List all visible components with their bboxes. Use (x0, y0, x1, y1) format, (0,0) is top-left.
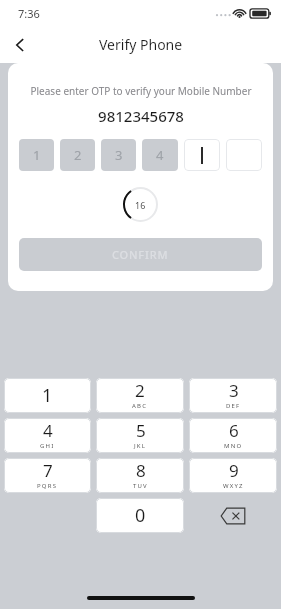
staticText: 5 (136, 419, 146, 442)
staticText: PQRS (37, 482, 58, 490)
staticText: 4 (156, 146, 164, 164)
staticText: 7:36 (18, 6, 40, 21)
button[interactable]: 1 (4, 378, 91, 413)
button[interactable]: 7 (4, 458, 91, 493)
staticText: 7 (43, 459, 53, 482)
staticText: 0 (135, 503, 146, 528)
staticText: Verify Phone (99, 35, 183, 54)
button[interactable]: 2 (60, 139, 95, 171)
staticText: TUV (133, 482, 148, 490)
button[interactable]: 0 (96, 498, 184, 533)
button[interactable]: Back (0, 26, 40, 63)
button[interactable]: 9 (189, 458, 277, 493)
staticText: JKL (134, 442, 147, 450)
staticText: 9 (229, 459, 239, 482)
button[interactable] (184, 139, 220, 171)
staticText: 16 (135, 199, 146, 211)
staticText: CONFIRM (112, 247, 169, 262)
staticText: ABC (132, 402, 148, 410)
button[interactable]: CONFIRM (19, 238, 262, 271)
button[interactable]: 4 (4, 418, 91, 453)
button[interactable]: Backspace (189, 498, 277, 533)
staticText: 2 (74, 146, 82, 164)
button[interactable]: 2 (96, 378, 184, 413)
staticText: 6 (229, 419, 239, 442)
staticText: 2 (135, 379, 145, 402)
button[interactable]: 4 (142, 139, 178, 171)
staticText: 3 (229, 379, 239, 402)
staticText: WXYZ (223, 482, 244, 490)
staticText: 1 (33, 146, 41, 164)
button[interactable]: 3 (189, 378, 277, 413)
staticText: DEF (226, 402, 241, 410)
staticText: 3 (115, 146, 123, 164)
staticText: 8 (136, 459, 146, 482)
button[interactable]: 6 (189, 418, 277, 453)
staticText: 9812345678 (98, 106, 184, 126)
button[interactable] (226, 139, 262, 171)
button[interactable]: 5 (96, 418, 184, 453)
staticText: Please enter OTP to verify your Mobile N… (30, 84, 252, 98)
button[interactable]: 1 (19, 139, 54, 171)
staticText: MNO (224, 442, 243, 450)
staticText: 1 (42, 383, 53, 408)
staticText: 4 (43, 419, 53, 442)
button[interactable]: 3 (101, 139, 136, 171)
button[interactable]: 8 (96, 458, 184, 493)
staticText: GHI (40, 442, 55, 450)
